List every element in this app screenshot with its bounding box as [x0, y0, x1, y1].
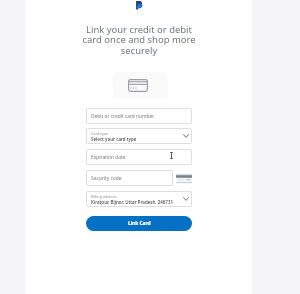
staticText: Card type	[91, 131, 108, 136]
button[interactable]: Security code	[86, 170, 173, 186]
staticText: Billing address	[91, 194, 117, 199]
button[interactable]: Expiration date	[86, 149, 192, 165]
staticText: Select your card type	[91, 136, 137, 142]
staticText: Debit or credit card number	[91, 113, 155, 120]
button[interactable]: Billing address	[86, 191, 192, 207]
staticText: Link your credit or debit card once and …	[81, 23, 197, 57]
staticText: Security code	[91, 175, 122, 182]
button[interactable]: Debit or credit card number	[86, 108, 192, 124]
staticText: Kiratpur, Bijnor, Uttar Pradesh, 246731	[91, 199, 173, 205]
button[interactable]: Link Card	[86, 216, 192, 231]
other: Where to find the security code	[176, 174, 192, 184]
staticText: Expiration date	[91, 154, 126, 161]
staticText: Link Card	[128, 220, 151, 227]
button[interactable]: Card type	[86, 128, 192, 144]
